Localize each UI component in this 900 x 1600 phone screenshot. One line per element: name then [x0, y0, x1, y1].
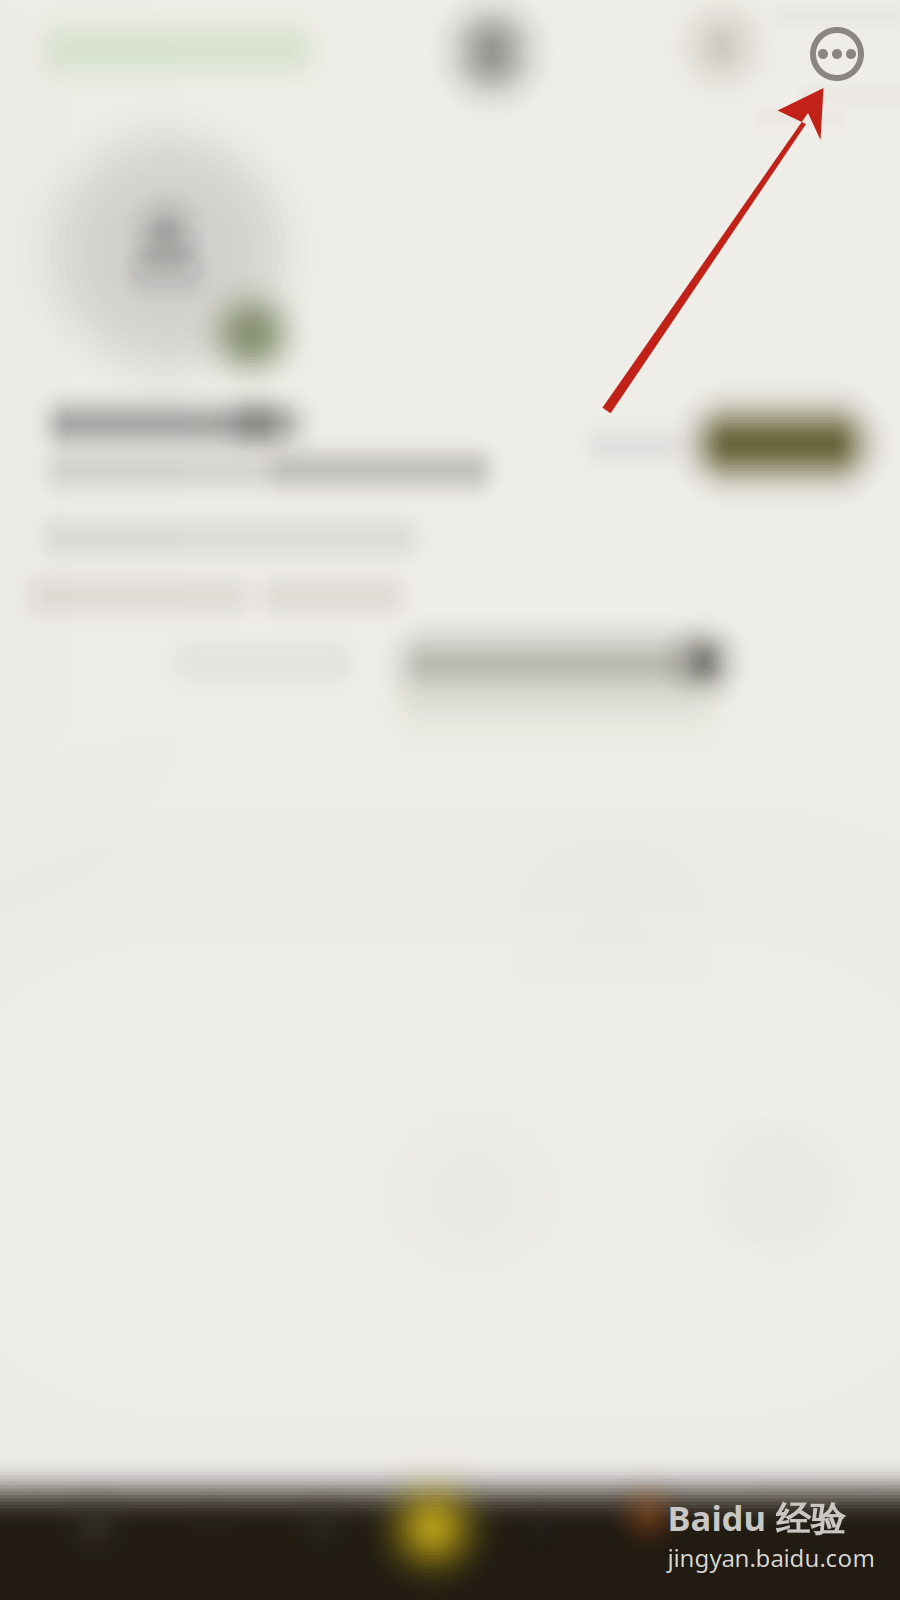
staticText: Baidu 经验 [667, 1494, 845, 1541]
button[interactable]: More options [805, 22, 869, 86]
staticText: jingyan.baidu.com [667, 1542, 874, 1574]
